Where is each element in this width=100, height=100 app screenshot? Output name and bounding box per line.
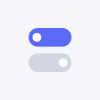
button[interactable]: Setting disabled [28,53,71,72]
button[interactable]: Setting enabled [28,28,71,47]
